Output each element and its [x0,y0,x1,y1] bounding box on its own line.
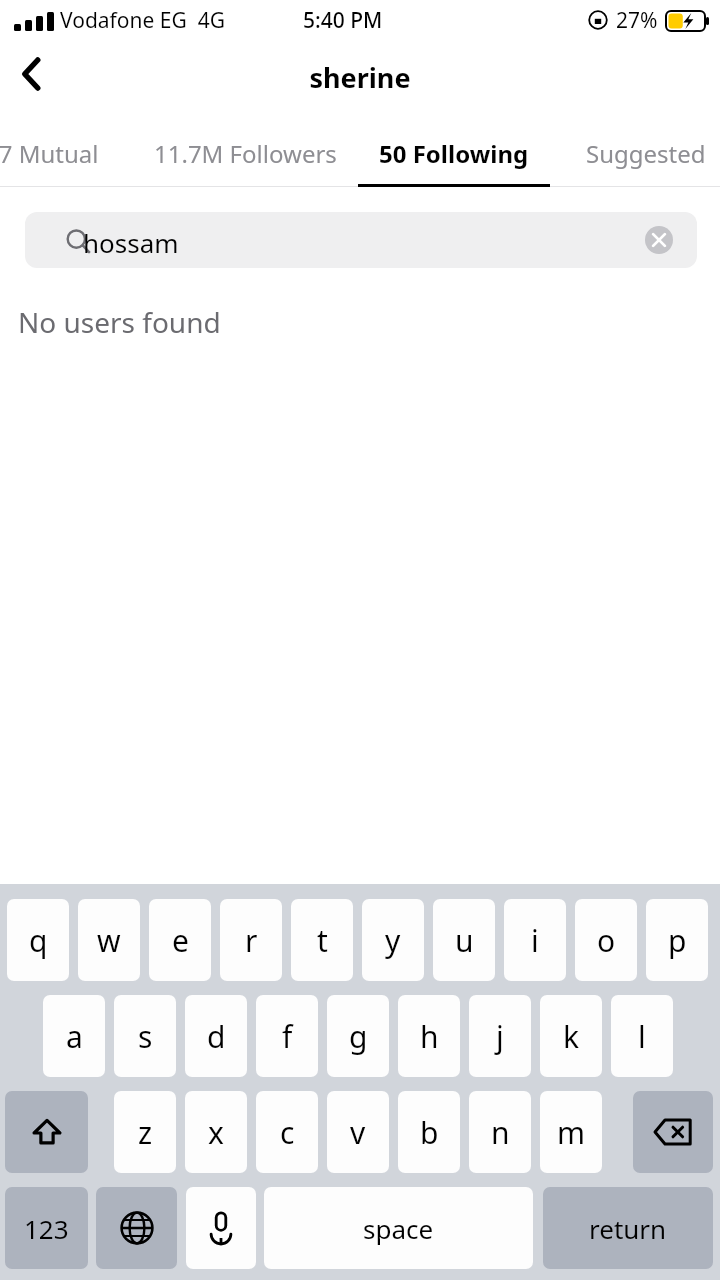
button[interactable]: z [114,1091,176,1173]
button[interactable]: f [256,995,318,1077]
button[interactable]: i [504,899,566,981]
button[interactable]: b [398,1091,460,1173]
button[interactable]: m [540,1091,602,1173]
staticText: p [668,920,687,961]
button[interactable]: q [7,899,69,981]
staticText: v [350,1112,366,1153]
staticText: Vodafone EG 4G [60,6,225,35]
staticText: 123 [24,1211,69,1246]
staticText: f [282,1016,293,1057]
staticText: r [245,920,258,961]
button[interactable]: y [362,899,424,981]
button[interactable]: hossam [25,212,697,268]
button[interactable]: Back [8,50,56,98]
button[interactable]: x [185,1091,247,1173]
button[interactable]: s [114,995,176,1077]
button[interactable]: o [575,899,637,981]
staticText: d [207,1016,226,1057]
staticText: 07 Mutual [0,137,99,170]
button[interactable]: t [291,899,353,981]
button[interactable]: j [469,995,531,1077]
button[interactable]: space [264,1187,533,1269]
button[interactable]: h [398,995,460,1077]
staticText: return [589,1211,667,1246]
staticText: z [138,1112,153,1153]
staticText: 27% [616,6,658,35]
staticText: j [496,1016,504,1057]
staticText: b [420,1112,439,1153]
button[interactable]: g [327,995,389,1077]
button[interactable]: Shift [5,1091,88,1173]
button[interactable]: Suggested [566,132,720,174]
button[interactable]: w [78,899,140,981]
button[interactable]: c [256,1091,318,1173]
staticText: 11.7M Followers [154,137,337,170]
staticText: u [455,920,474,961]
staticText: No users found [18,303,221,341]
button[interactable]: Dictation [186,1187,256,1269]
staticText: x [208,1112,224,1153]
staticText: g [349,1016,368,1057]
button[interactable]: v [327,1091,389,1173]
staticText: t [317,920,328,961]
button[interactable]: r [220,899,282,981]
button[interactable]: u [433,899,495,981]
staticText: k [563,1016,580,1057]
staticText: n [491,1112,510,1153]
staticText: hossam [83,225,179,260]
button[interactable]: a [43,995,105,1077]
staticText: l [638,1016,646,1057]
staticText: h [420,1016,439,1057]
button[interactable]: 123 [5,1187,88,1269]
staticText: e [172,920,189,961]
staticText: o [597,920,616,961]
staticText: q [29,920,48,961]
button[interactable]: l [611,995,673,1077]
button[interactable]: e [149,899,211,981]
button[interactable]: 07 Mutual [0,132,112,174]
staticText: m [557,1112,586,1153]
staticText: Suggested [586,137,706,170]
staticText: c [280,1112,295,1153]
staticText: a [66,1016,83,1057]
staticText: y [385,920,401,961]
staticText: 5:40 PM [303,6,383,35]
staticText: s [138,1016,153,1057]
button[interactable]: Switch keyboard [96,1187,177,1269]
button[interactable]: 11.7M Followers [152,132,338,174]
button[interactable]: 50 Following [358,132,550,174]
button[interactable]: return [543,1187,713,1269]
staticText: sherine [0,59,720,96]
button[interactable]: n [469,1091,531,1173]
button[interactable]: k [540,995,602,1077]
staticText: 50 Following [379,137,529,170]
button[interactable]: d [185,995,247,1077]
staticText: i [531,920,539,961]
staticText: space [363,1211,434,1246]
button[interactable]: Backspace [633,1091,713,1173]
staticText: w [97,920,121,961]
button[interactable]: Clear search [642,223,676,257]
button[interactable]: p [646,899,708,981]
